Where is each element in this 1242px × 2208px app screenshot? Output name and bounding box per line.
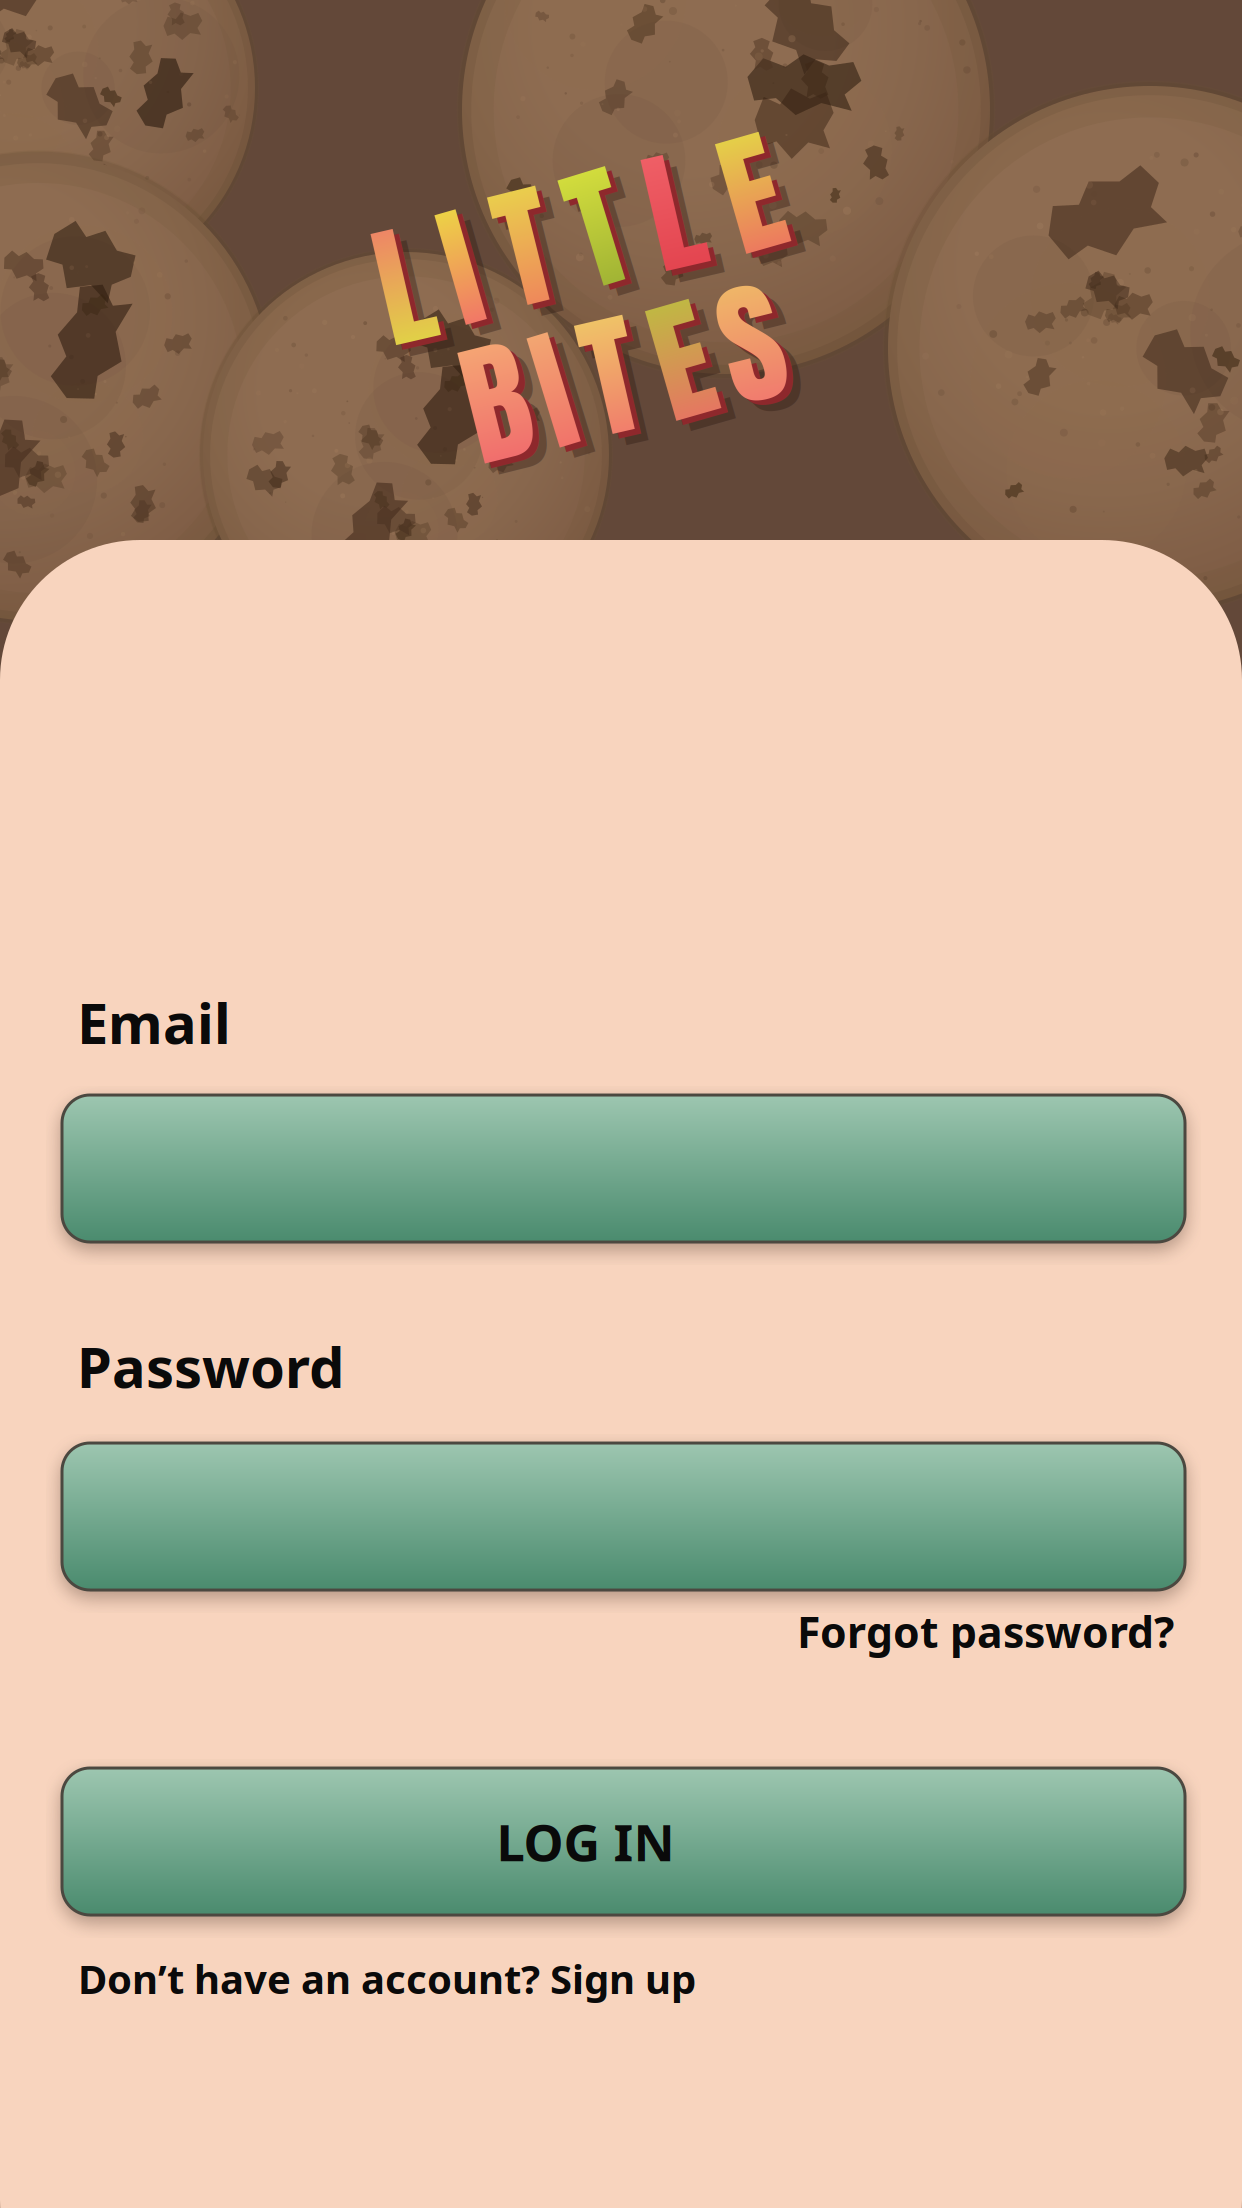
button[interactable]: Password field bbox=[62, 1443, 1185, 1590]
staticText: T bbox=[583, 144, 635, 342]
staticText: L bbox=[653, 119, 705, 317]
staticText: E bbox=[736, 109, 790, 307]
button[interactable]: Don’t have an account? Sign up bbox=[78, 1952, 696, 2005]
staticText: E bbox=[660, 268, 714, 466]
staticText: B bbox=[470, 310, 533, 508]
staticText: Email bbox=[77, 985, 231, 1059]
staticText: T bbox=[510, 163, 562, 361]
staticText: I bbox=[550, 306, 580, 504]
staticText: L bbox=[389, 201, 441, 399]
staticText: T bbox=[596, 292, 648, 490]
staticText: I bbox=[451, 175, 481, 373]
staticText: Don’t have an account? Sign up bbox=[78, 1952, 696, 2005]
staticText: LOG IN bbox=[496, 1808, 674, 1875]
staticText: L bbox=[659, 127, 711, 325]
staticText: B bbox=[476, 318, 539, 516]
staticText: Password bbox=[77, 1329, 344, 1403]
staticText: S bbox=[726, 251, 787, 449]
staticText: E bbox=[730, 101, 784, 299]
staticText: I bbox=[544, 298, 574, 496]
button[interactable]: Email address field bbox=[62, 1095, 1185, 1242]
staticText: L bbox=[383, 193, 435, 391]
staticText: T bbox=[590, 284, 642, 482]
staticText: T bbox=[577, 136, 629, 334]
staticText: S bbox=[732, 259, 793, 457]
button[interactable]: Forgot password? bbox=[797, 1603, 1174, 1660]
staticText: E bbox=[666, 276, 720, 474]
staticText: I bbox=[457, 183, 487, 381]
button[interactable]: LOG IN bbox=[62, 1768, 1185, 1915]
staticText: Forgot password? bbox=[797, 1603, 1174, 1660]
staticText: T bbox=[504, 155, 556, 353]
